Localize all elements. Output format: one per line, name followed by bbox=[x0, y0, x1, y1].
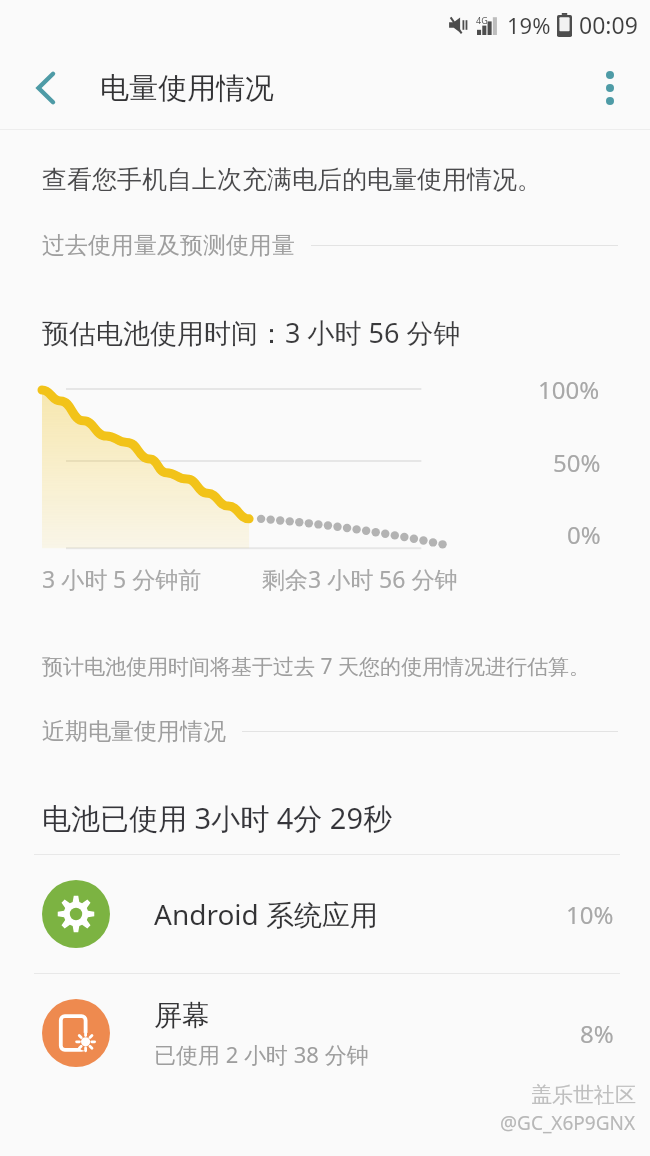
staticText: 预估电池使用时间：3 小时 56 分钟 bbox=[42, 314, 461, 351]
button[interactable]: Android 系统应用 bbox=[0, 855, 650, 973]
staticText: 近期电量使用情况 bbox=[42, 717, 226, 746]
staticText: 0% bbox=[567, 518, 601, 551]
button[interactable]: Back bbox=[22, 64, 70, 112]
staticText: 19% bbox=[507, 10, 551, 40]
staticText: 电量使用情况 bbox=[100, 70, 274, 107]
staticText: 剩余3 小时 56 分钟 bbox=[262, 563, 458, 594]
staticText: 3 小时 5 分钟前 bbox=[42, 563, 202, 594]
staticText: 盖乐世社区 bbox=[531, 1082, 636, 1108]
staticText: 查看您手机自上次充满电后的电量使用情况。 bbox=[42, 164, 542, 195]
staticText: 100% bbox=[538, 373, 600, 406]
staticText: @GC_X6P9GNX bbox=[500, 1110, 636, 1136]
button[interactable]: More options bbox=[582, 60, 638, 116]
button[interactable]: 屏幕 bbox=[0, 974, 650, 1092]
staticText: 4G bbox=[476, 14, 488, 26]
staticText: 过去使用量及预测使用量 bbox=[42, 231, 295, 260]
staticText: 00:09 bbox=[579, 9, 638, 40]
staticText: 10% bbox=[566, 898, 614, 931]
staticText: 50% bbox=[553, 446, 601, 479]
staticText: 屏幕 bbox=[154, 998, 210, 1033]
staticText: 8% bbox=[580, 1017, 614, 1050]
staticText: 已使用 2 小时 38 分钟 bbox=[154, 1039, 369, 1069]
staticText: 电池已使用 3小时 4分 29秒 bbox=[42, 798, 392, 838]
staticText: Android 系统应用 bbox=[154, 895, 379, 933]
staticText: 预计电池使用时间将基于过去 7 天您的使用情况进行估算。 bbox=[42, 652, 590, 681]
